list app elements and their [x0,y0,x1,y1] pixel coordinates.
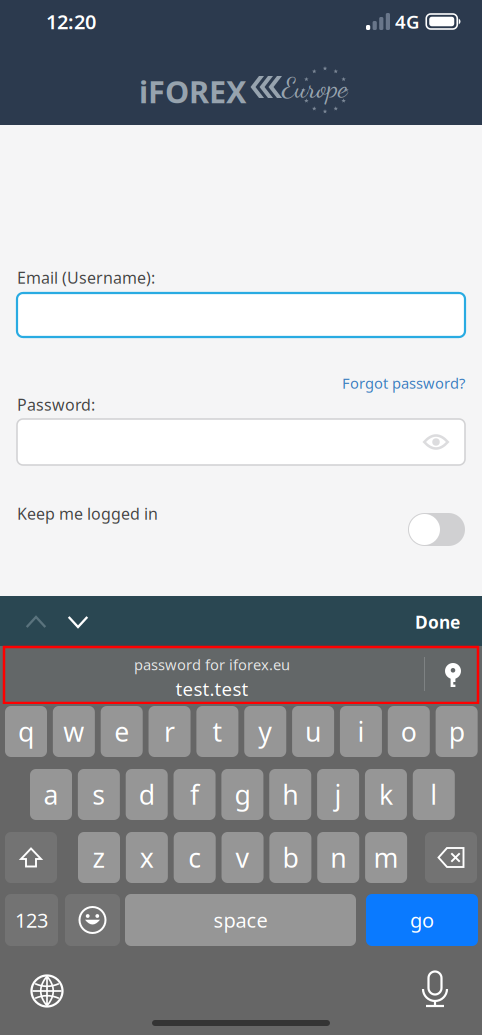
button[interactable]: Shift [5,832,57,883]
staticText: o [401,714,417,749]
staticText: x [140,840,154,875]
staticText: password for iforex.eu [134,655,290,674]
staticText: h [282,777,298,812]
button[interactable]: b [269,832,311,883]
button[interactable]: a [30,769,72,820]
staticText: i [357,714,364,749]
button[interactable]: g [221,769,263,820]
staticText: e [114,714,129,749]
staticText: m [374,840,399,875]
staticText: v [236,840,250,875]
button[interactable]: k [365,769,407,820]
staticText: b [282,840,298,875]
staticText: Europe [282,71,347,105]
staticText: test.test [175,676,248,701]
button[interactable]: password for iforex.eu [0,646,482,704]
staticText: 123 [15,907,48,933]
button[interactable]: h [269,769,311,820]
button[interactable]: q [5,706,47,757]
staticText: r [164,714,175,749]
button[interactable]: m [365,832,407,883]
staticText: Password: [17,394,95,415]
staticText: j [335,777,342,812]
staticText: f [190,777,199,812]
button[interactable]: Dictation [413,968,457,1012]
button[interactable]: Previous field [16,604,56,640]
staticText: space [213,907,267,933]
staticText: y [258,714,272,749]
button[interactable]: Emoji [65,894,120,946]
button[interactable]: Delete [425,832,477,883]
staticText: Forgot password? [342,373,465,393]
staticText: 4G [395,9,420,34]
staticText: Email (Username): [17,267,155,288]
button[interactable]: e [101,706,143,757]
button[interactable]: Forgot password? [335,372,465,394]
button[interactable]: i [340,706,382,757]
button[interactable]: s [78,769,120,820]
staticText: Keep me logged in [17,503,158,524]
button[interactable]: c [174,832,216,883]
button[interactable]: r [149,706,191,757]
staticText: w [63,714,84,749]
button[interactable]: v [222,832,264,883]
button[interactable]: w [53,706,95,757]
staticText: z [92,840,105,875]
staticText: c [188,840,201,875]
staticText: d [139,777,155,812]
staticText: n [330,840,346,875]
button[interactable]: 123 [5,894,58,946]
button[interactable]: Keep me logged in [408,513,465,546]
button[interactable]: space [125,894,356,946]
button[interactable]: z [78,832,120,883]
button[interactable]: Done [390,605,460,639]
button[interactable]: x [126,832,168,883]
button[interactable]: f [174,769,216,820]
button[interactable]: o [388,706,430,757]
staticText: u [305,714,321,749]
button[interactable]: u [292,706,334,757]
staticText: k [379,777,393,812]
staticText: q [18,714,34,749]
staticText: a [43,777,58,812]
staticText: t [212,714,222,749]
button[interactable]: d [126,769,168,820]
staticText: Done [415,610,460,633]
staticText: 12:20 [46,8,96,35]
staticText: p [449,714,465,749]
button[interactable]: p [436,706,478,757]
button[interactable]: j [317,769,359,820]
button[interactable]: y [244,706,286,757]
staticText: s [92,777,105,812]
button[interactable]: Next keyboard [25,969,69,1013]
button[interactable]: n [317,832,359,883]
staticText: l [430,777,437,812]
button[interactable]: Next field [58,604,98,640]
button[interactable]: go [366,894,478,946]
button[interactable]: l [413,769,455,820]
button[interactable]: t [196,706,238,757]
staticText: g [234,777,250,812]
staticText: iFOREX [139,71,247,112]
staticText: go [410,907,434,933]
